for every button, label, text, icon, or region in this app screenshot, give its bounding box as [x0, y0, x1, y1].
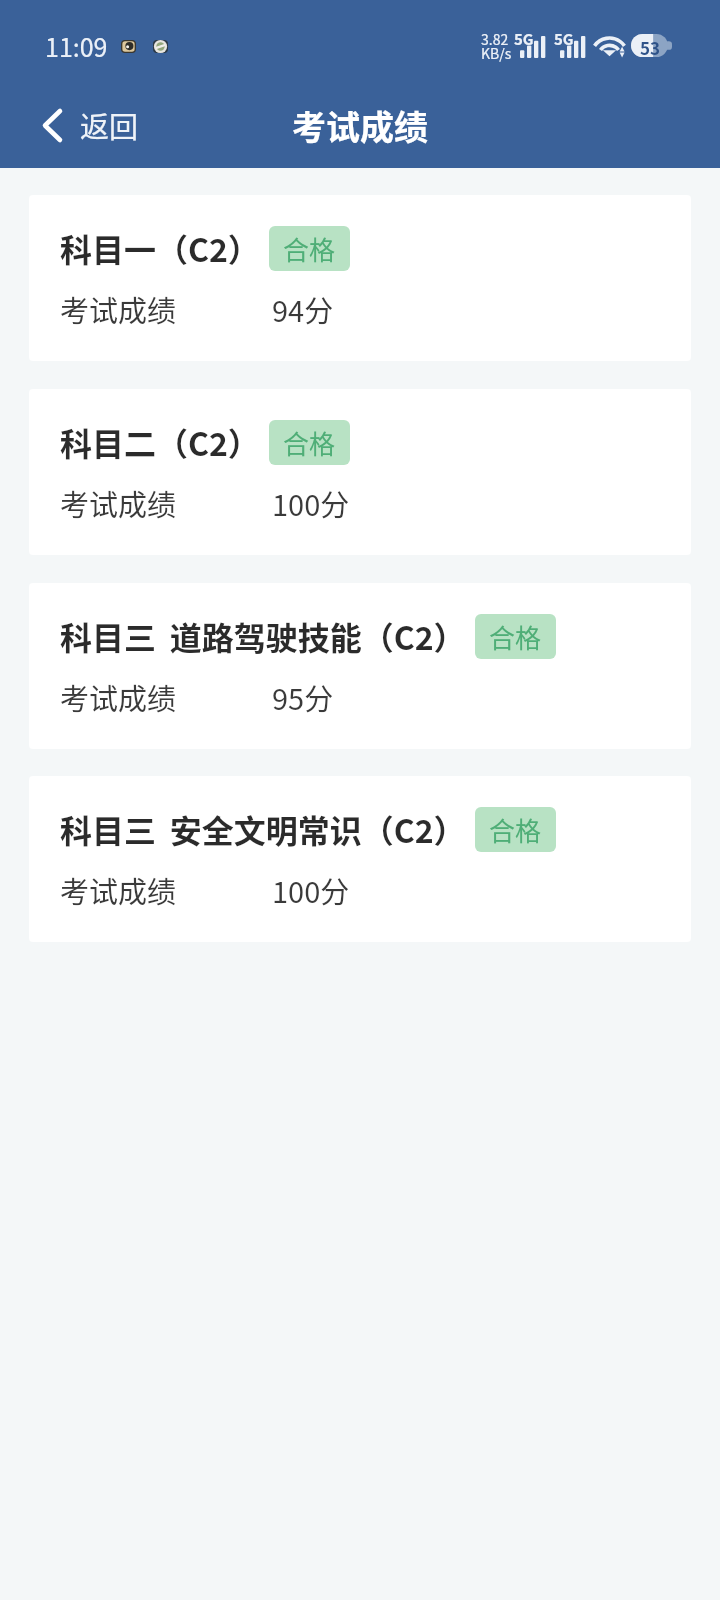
staticText: 考试成绩: [60, 288, 177, 330]
staticText: 5G: [554, 28, 574, 50]
button[interactable]: 科目三 道路驾驶技能（C2）: [29, 583, 691, 749]
staticText: 合格: [489, 618, 542, 656]
button[interactable]: 科目一（C2）: [29, 195, 691, 361]
staticText: 考试成绩: [60, 869, 177, 911]
staticText: 科目二（C2）: [60, 419, 260, 465]
staticText: 考试成绩: [292, 101, 428, 150]
staticText: 合格: [283, 230, 336, 268]
button[interactable]: 科目三 安全文明常识（C2）: [29, 776, 691, 942]
staticText: 5G: [514, 28, 534, 50]
staticText: 考试成绩: [60, 482, 177, 524]
staticText: KB/s: [481, 43, 512, 63]
staticText: 95分: [272, 676, 334, 718]
staticText: 53: [640, 35, 661, 58]
staticText: 合格: [489, 811, 542, 849]
staticText: 100分: [272, 482, 350, 524]
staticText: 3.82: [481, 29, 509, 49]
button[interactable]: 返回: [0, 98, 159, 164]
staticText: 94分: [272, 288, 334, 330]
staticText: 考试成绩: [60, 676, 177, 718]
staticText: 100分: [272, 869, 350, 911]
staticText: 返回: [80, 104, 139, 146]
staticText: 科目三 安全文明常识（C2）: [60, 806, 466, 852]
button[interactable]: 科目二（C2）: [29, 389, 691, 555]
staticText: 科目三 道路驾驶技能（C2）: [60, 613, 466, 659]
staticText: 合格: [283, 424, 336, 462]
staticText: 11:09: [45, 28, 108, 64]
staticText: 科目一（C2）: [60, 225, 260, 271]
